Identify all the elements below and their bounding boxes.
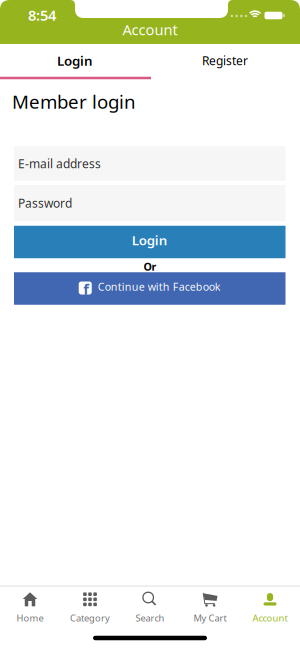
staticText: 8:54 [28,5,56,25]
button[interactable]: Home [0,592,60,624]
button[interactable]: f [14,272,285,305]
staticText: Login [132,231,168,249]
button[interactable]: Register [150,44,300,77]
staticText: Category [70,612,110,624]
staticText: Account [252,612,287,624]
staticText: Account [122,20,177,39]
staticText: Login [57,52,93,69]
staticText: Or [143,259,156,274]
button[interactable]: Search [120,592,180,624]
button[interactable]: My Cart [180,592,240,624]
staticText: f [83,279,89,299]
staticText: E-mail address [18,155,101,171]
textField[interactable]: Password [18,195,285,211]
staticText: Member login [12,89,136,114]
staticText: Home [16,612,43,624]
staticText: Continue with Facebook [98,279,221,294]
button[interactable]: Login [0,44,150,77]
textField[interactable]: E-mail address [18,155,285,171]
button[interactable]: Category [60,592,120,624]
staticText: Password [18,195,72,211]
button[interactable]: Account [240,592,300,624]
staticText: Search [135,612,164,624]
button[interactable]: Login [14,226,285,258]
staticText: Register [202,52,248,68]
staticText: My Cart [193,612,226,624]
